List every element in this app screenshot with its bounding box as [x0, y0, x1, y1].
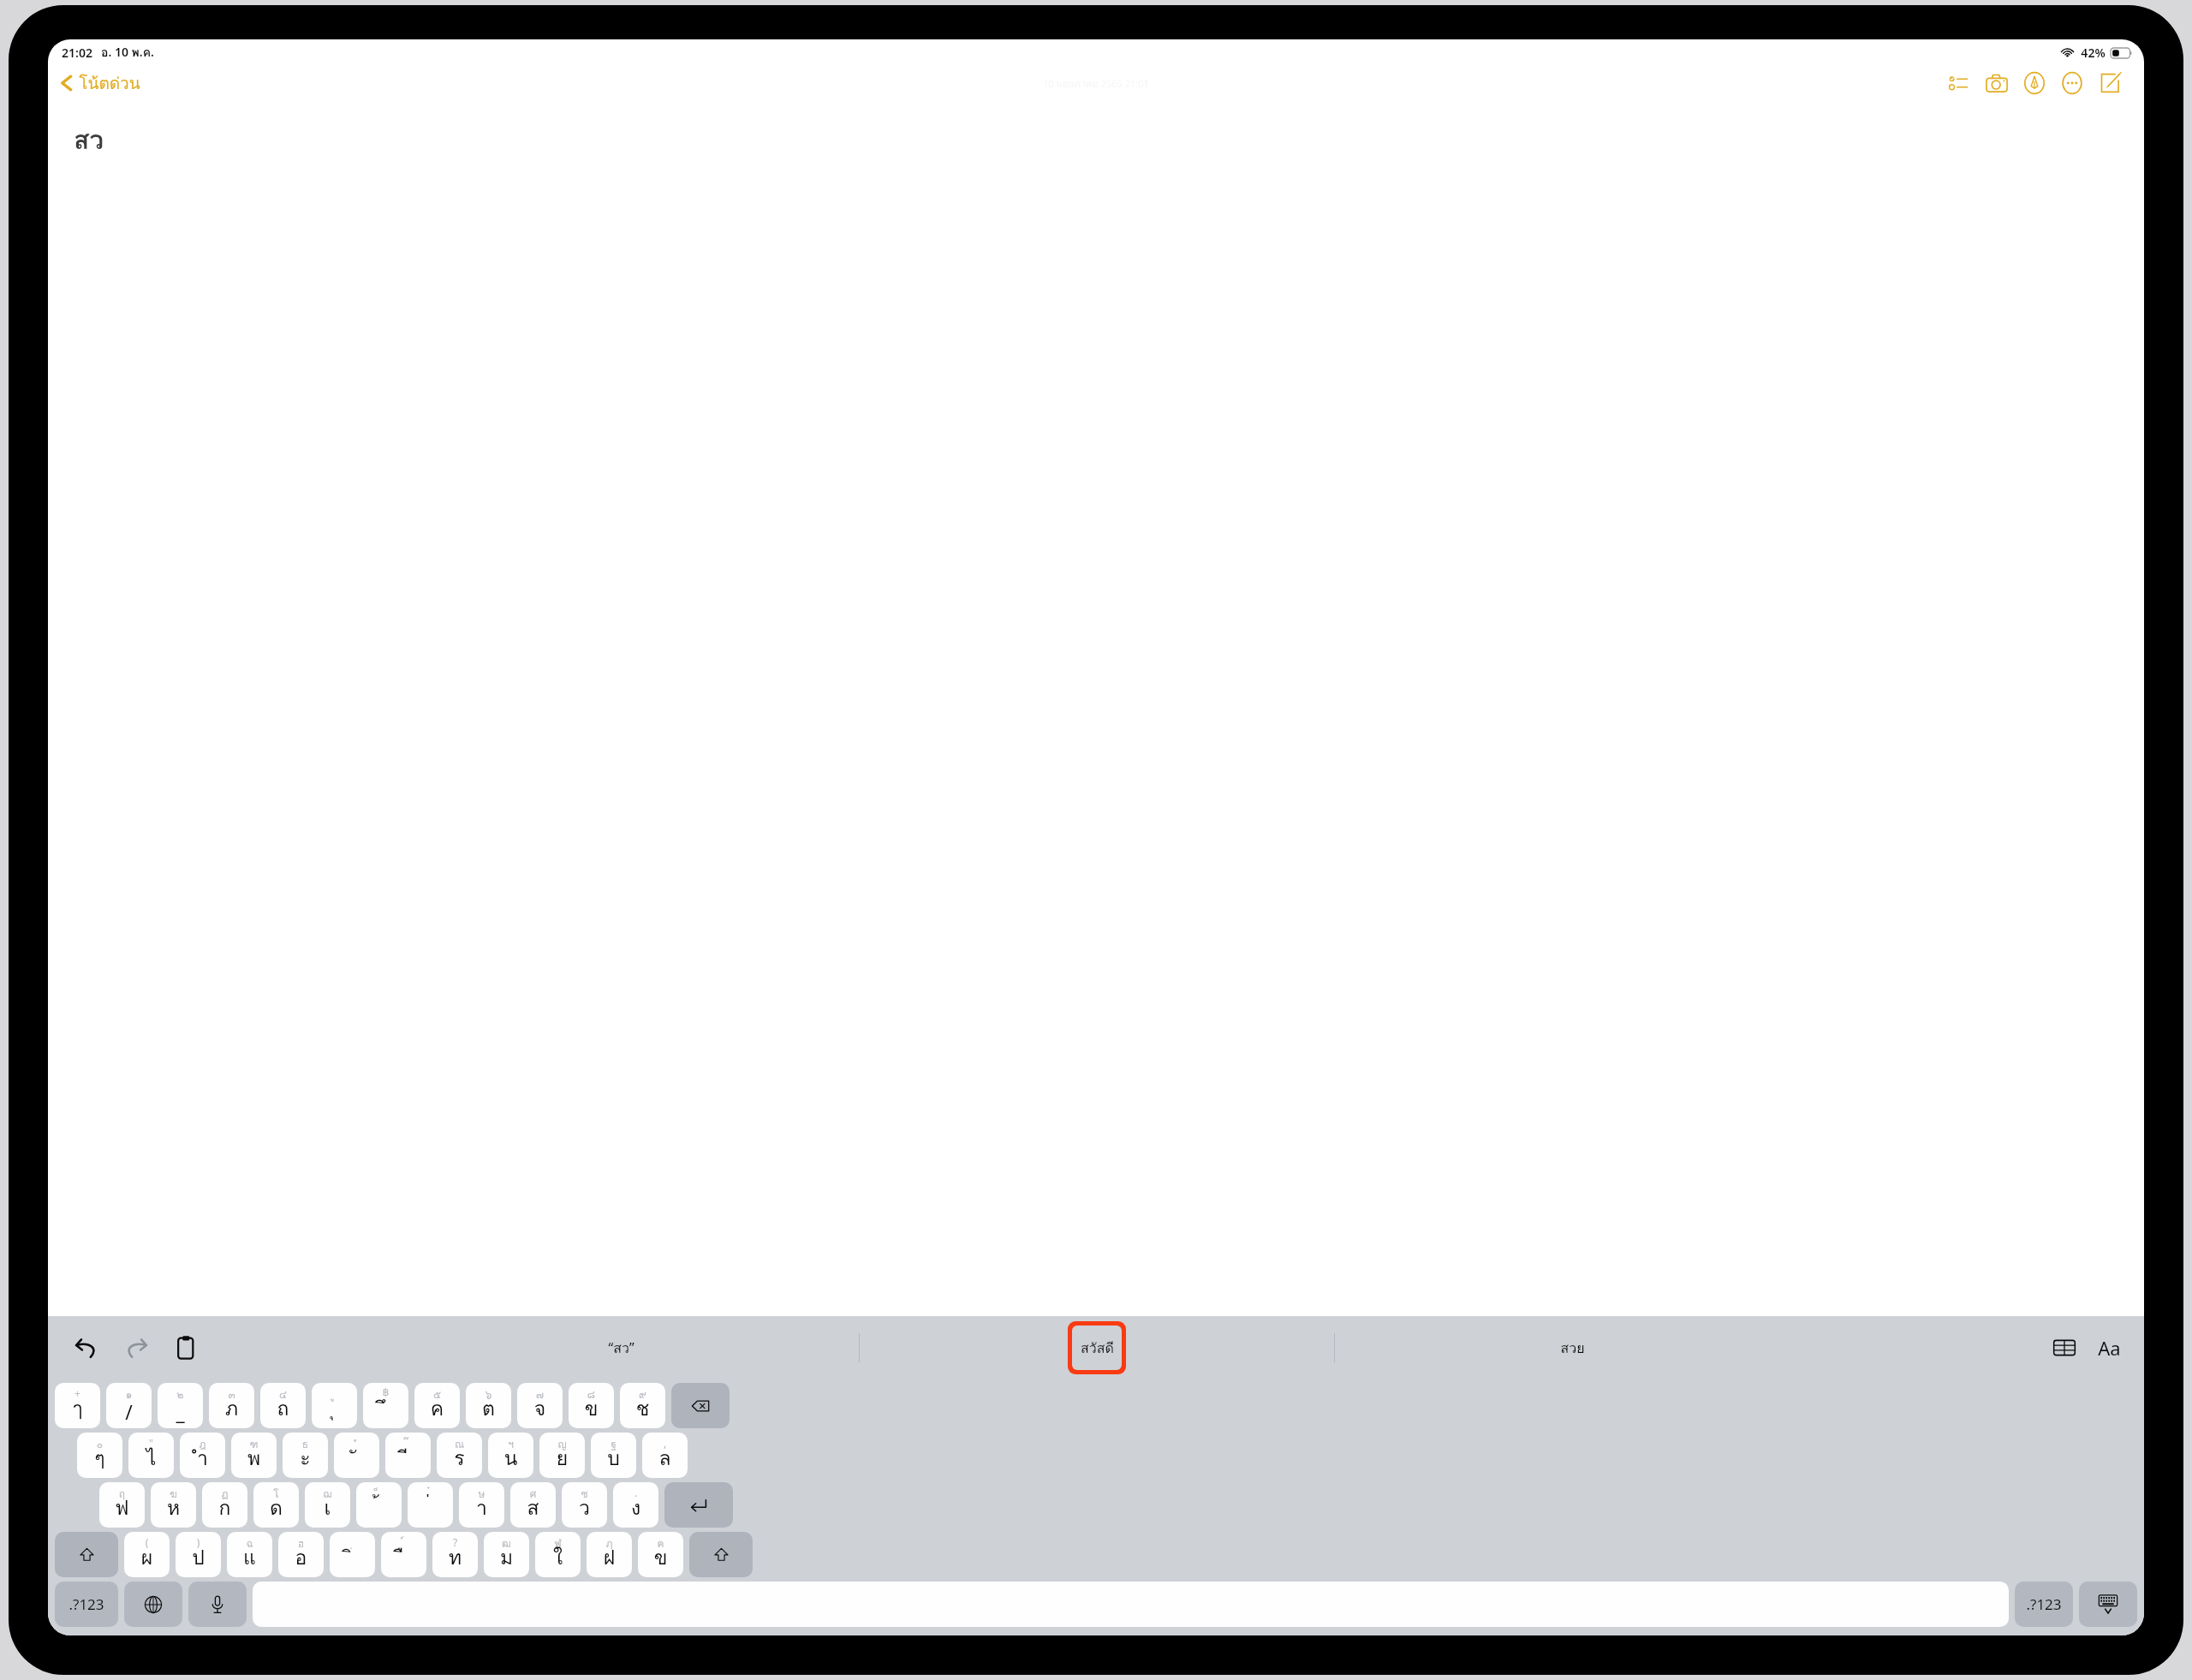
staticText: ฦ — [587, 1535, 632, 1552]
staticText: 42% — [2081, 45, 2106, 61]
staticText: ฑ — [231, 1436, 277, 1452]
button[interactable]: ณ — [437, 1433, 482, 1478]
button[interactable]: ฮ — [278, 1532, 324, 1577]
button[interactable]: Redo — [116, 1328, 156, 1367]
button[interactable]: Dictation — [188, 1582, 247, 1627]
staticText: , — [642, 1436, 688, 1450]
button[interactable]: Checklist — [1940, 65, 1978, 101]
staticText: ๑ — [106, 1386, 152, 1403]
staticText: อ. 10 พ.ค. — [101, 43, 154, 62]
button[interactable]: ศ — [510, 1482, 556, 1528]
staticText: ฯ — [488, 1436, 533, 1452]
button[interactable]: .?123 — [2015, 1582, 2073, 1627]
staticText: ฟ — [99, 1492, 145, 1524]
button[interactable]: ฉ — [227, 1532, 272, 1577]
button[interactable]: Undo — [67, 1328, 106, 1367]
staticText: .?123 — [68, 1594, 104, 1614]
button[interactable]: โน้ตด่วน — [57, 70, 140, 96]
staticText: ๐ — [77, 1436, 122, 1452]
staticText: ๖ — [466, 1386, 511, 1403]
button[interactable]: Shift — [689, 1532, 753, 1577]
staticText: ใ — [535, 1542, 581, 1574]
button[interactable]: ฏ — [202, 1482, 247, 1528]
button[interactable]: ฤ — [99, 1482, 145, 1528]
button[interactable]: Backspace — [671, 1383, 730, 1428]
button[interactable]: ฯ — [488, 1433, 533, 1478]
button[interactable]: ฬ — [535, 1532, 581, 1577]
staticText: ์ — [381, 1535, 426, 1552]
button[interactable]: ฺ — [330, 1532, 375, 1577]
button[interactable]: ๘ — [569, 1383, 614, 1428]
button[interactable]: ์ — [381, 1532, 426, 1577]
button[interactable]: Format — [2091, 1330, 2127, 1366]
button[interactable]: ๓ — [209, 1383, 254, 1428]
button[interactable]: ? — [432, 1532, 478, 1577]
button[interactable]: ํ — [334, 1433, 379, 1478]
button[interactable]: Paste — [166, 1328, 205, 1367]
button[interactable]: ฦ — [587, 1532, 632, 1577]
staticText: ๒ — [158, 1386, 203, 1403]
staticText: ผ — [124, 1542, 170, 1574]
other: Shift — [78, 1546, 96, 1564]
button[interactable]: ๔ — [260, 1383, 306, 1428]
button[interactable]: ฑ — [231, 1433, 277, 1478]
button[interactable]: ๖ — [466, 1383, 511, 1428]
button[interactable]: Hide keyboard — [2079, 1582, 2137, 1627]
button[interactable]: ) — [176, 1532, 221, 1577]
button[interactable]: “สว” — [384, 1316, 859, 1379]
button[interactable]: ( — [124, 1532, 170, 1577]
staticText: ี — [385, 1443, 431, 1474]
button[interactable]: ๕ — [414, 1383, 460, 1428]
button[interactable]: ๋ — [408, 1482, 453, 1528]
button[interactable]: สวัสดี — [1072, 1326, 1122, 1370]
button[interactable]: ู — [312, 1383, 357, 1428]
button[interactable]: Next keyboard — [124, 1582, 182, 1627]
button[interactable]: ฆ — [151, 1482, 196, 1528]
button[interactable]: ๙ — [620, 1383, 665, 1428]
button[interactable]: ๒ — [158, 1383, 203, 1428]
button[interactable]: Return — [664, 1482, 733, 1528]
button[interactable]: ฐ — [591, 1433, 636, 1478]
button[interactable]: Camera — [1978, 65, 2016, 101]
button[interactable]: ธ — [283, 1433, 328, 1478]
staticText: ฤ — [99, 1486, 145, 1502]
button[interactable]: ฎ — [180, 1433, 225, 1478]
button[interactable]: ๐ — [77, 1433, 122, 1478]
button[interactable]: More — [2053, 65, 2091, 101]
staticText: อ — [278, 1542, 324, 1574]
button[interactable]: ฌ — [305, 1482, 350, 1528]
button[interactable]: + — [55, 1383, 100, 1428]
button[interactable]: โ — [253, 1482, 299, 1528]
button[interactable]: New note — [2091, 65, 2129, 101]
button[interactable]: ๑ — [106, 1383, 152, 1428]
staticText: .?123 — [2026, 1594, 2062, 1614]
button[interactable]: ฒ — [484, 1532, 529, 1577]
button[interactable]: สวย — [1335, 1316, 1809, 1379]
button[interactable]: ญ — [539, 1433, 585, 1478]
button[interactable]: . — [613, 1482, 658, 1528]
button[interactable]: ๗ — [517, 1383, 563, 1428]
button[interactable]: ฿ — [363, 1383, 408, 1428]
staticText: ฬ — [535, 1535, 581, 1552]
button[interactable]: ซ — [562, 1482, 607, 1528]
button[interactable]: Shift — [55, 1532, 118, 1577]
button[interactable]: " — [128, 1433, 174, 1478]
button[interactable]: .?123 — [55, 1582, 118, 1627]
button[interactable]: ษ — [459, 1482, 504, 1528]
staticText: ฒ — [484, 1535, 529, 1552]
button[interactable]: Markup — [2016, 65, 2053, 101]
staticText: ั — [334, 1443, 379, 1474]
staticText: น — [488, 1443, 533, 1474]
staticText: ๙ — [620, 1386, 665, 1403]
button[interactable]: , — [642, 1433, 688, 1478]
button[interactable]: ็ — [356, 1482, 402, 1528]
button[interactable]: Table — [2046, 1330, 2082, 1366]
staticText: ฮ — [278, 1535, 324, 1552]
staticText: ก — [202, 1492, 247, 1524]
button[interactable]: ๊ — [385, 1433, 431, 1478]
staticText: " — [128, 1436, 174, 1450]
staticText: ฝ — [587, 1542, 632, 1574]
button[interactable]: ฅ — [638, 1532, 683, 1577]
